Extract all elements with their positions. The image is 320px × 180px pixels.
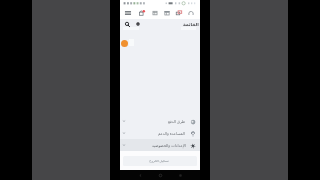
button[interactable]: Settings xyxy=(134,20,142,28)
button[interactable]: Menu xyxy=(123,7,133,19)
button[interactable]: Search xyxy=(123,20,131,28)
button[interactable]: المساعدة والدعم xyxy=(120,127,200,139)
staticText: القائمة xyxy=(183,22,199,27)
button[interactable]: Store xyxy=(162,7,172,19)
button[interactable]: Recents xyxy=(176,171,184,179)
staticText: طرق الدفع xyxy=(168,119,186,124)
staticText: تسجيل الخروج xyxy=(149,159,169,163)
button[interactable]: Messages xyxy=(174,7,184,19)
button[interactable]: تسجيل الخروج xyxy=(123,156,197,166)
button[interactable]: طرق الدفع xyxy=(120,115,200,127)
button[interactable]: Support xyxy=(186,7,196,19)
staticText: المساعدة والدعم xyxy=(158,131,186,136)
staticText: الإعدادات والخصوصية xyxy=(152,143,186,148)
button[interactable]: الإعدادات والخصوصية xyxy=(120,139,200,151)
button[interactable]: Cart xyxy=(137,7,147,19)
button[interactable]: Wallet xyxy=(150,7,160,19)
button[interactable]: Home xyxy=(156,171,164,179)
button[interactable]: Back xyxy=(136,171,144,179)
